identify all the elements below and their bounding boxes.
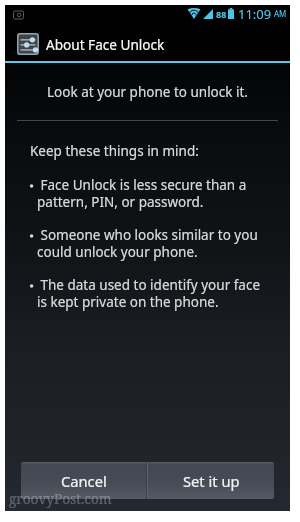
staticText: About Face Unlock bbox=[46, 35, 165, 54]
staticText: Look at your phone to unlock it. bbox=[5, 83, 290, 101]
staticText: AM bbox=[274, 8, 287, 19]
staticText: Face Unlock is less secure than a patter… bbox=[37, 176, 269, 211]
button[interactable]: Set it up bbox=[148, 462, 274, 499]
button[interactable]: Cancel bbox=[21, 462, 146, 499]
staticText: The data used to identify your face is k… bbox=[37, 276, 269, 311]
staticText: Keep these things in mind: bbox=[30, 142, 199, 160]
staticText: Someone who looks similar to you could u… bbox=[37, 226, 269, 261]
staticText: 88 bbox=[216, 8, 227, 20]
staticText: Set it up bbox=[183, 471, 240, 491]
staticText: Cancel bbox=[61, 471, 107, 491]
other: Screenshot bbox=[13, 6, 24, 21]
staticText: groovyPost.com bbox=[9, 489, 112, 508]
staticText: 11:09 bbox=[238, 5, 272, 22]
